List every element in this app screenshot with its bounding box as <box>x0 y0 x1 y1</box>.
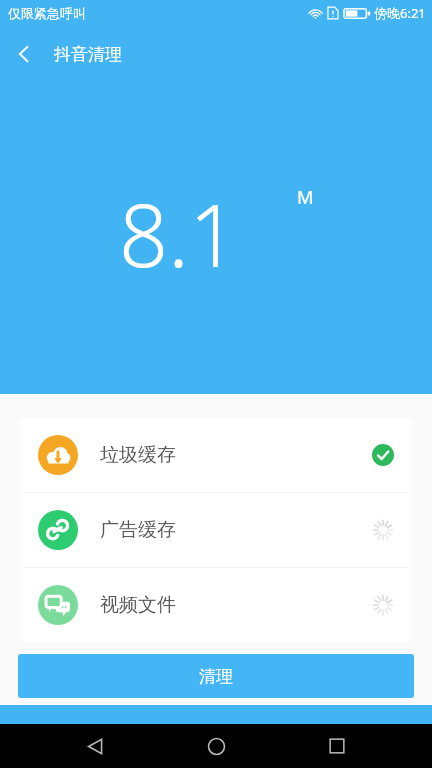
staticText: 清理 <box>199 666 233 687</box>
button[interactable]: Recents <box>311 724 363 768</box>
button[interactable]: 视频文件 <box>20 568 412 642</box>
staticText: 视频文件 <box>100 593 176 617</box>
staticText: 傍晚6:21 <box>374 4 426 22</box>
button[interactable]: Home <box>190 724 242 768</box>
button[interactable]: Back <box>0 30 48 78</box>
staticText: 广告缓存 <box>100 518 176 542</box>
staticText: 抖音清理 <box>54 44 122 65</box>
staticText: 仅限紧急呼叫 <box>8 5 86 21</box>
button[interactable]: 广告缓存 <box>20 493 412 567</box>
staticText: 垃圾缓存 <box>100 443 176 467</box>
staticText: M <box>297 185 314 210</box>
button[interactable]: 清理 <box>18 654 414 698</box>
staticText: 8.1 <box>119 175 239 292</box>
button[interactable]: 垃圾缓存 <box>20 418 412 492</box>
button[interactable]: Back <box>69 724 121 768</box>
